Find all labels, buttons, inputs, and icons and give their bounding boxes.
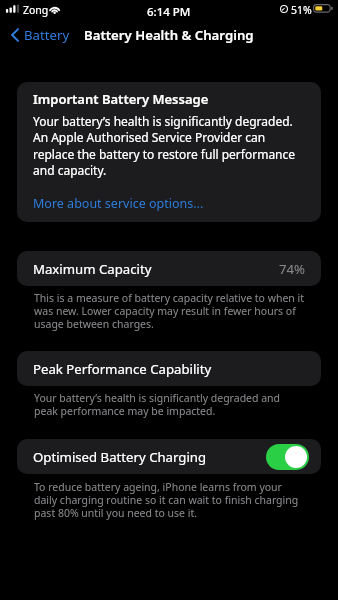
button[interactable]: Peak Performance Capability [17,351,321,386]
button[interactable]: Maximum Capacity [17,251,321,286]
staticText: Zong [23,3,49,17]
button[interactable]: More about service options... [33,195,204,212]
staticText: An Apple Authorised Service Provider can [33,129,266,145]
staticText: Battery [24,26,70,44]
staticText: Maximum Capacity [33,260,152,278]
staticText: This is a measure of battery capacity re… [34,291,305,305]
staticText: usage between charges. [34,317,154,331]
staticText: past 80% until you need to use it. [34,506,198,520]
button[interactable]: Battery [7,24,74,46]
staticText: 6:14 PM [147,4,191,20]
staticText: 74% [279,260,306,278]
staticText: To reduce battery ageing, iPhone learns … [34,480,282,494]
button[interactable]: Optimised Battery Charging [17,439,321,474]
staticText: peak performance may be impacted. [34,404,216,418]
staticText: was new. Lower capacity may result in fe… [34,304,296,318]
staticText: Important Battery Message [33,90,209,108]
staticText: Optimised Battery Charging [33,448,207,466]
staticText: daily charging routine so it can wait to… [34,493,299,507]
staticText: Battery Health & Charging [84,26,254,44]
staticText: Your battery’s health is significantly d… [33,113,293,129]
staticText: Peak Performance Capability [33,360,212,378]
staticText: Your battery’s health is significantly d… [34,391,281,405]
staticText: 51% [291,3,312,17]
staticText: replace the battery to restore full perf… [33,146,296,162]
button[interactable]: Optimised Battery Charging [266,444,309,470]
staticText: and capacity. [33,162,107,178]
staticText: More about service options... [33,195,204,212]
